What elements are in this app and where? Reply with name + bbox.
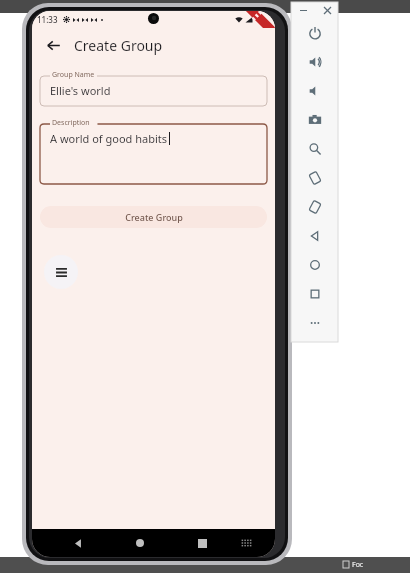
button[interactable]: Overview	[291, 279, 338, 308]
button[interactable]: Home	[109, 529, 171, 557]
button[interactable]: Create Group	[40, 206, 267, 228]
button[interactable]: Description	[40, 118, 267, 184]
button[interactable]: Back	[40, 32, 66, 58]
button[interactable]: Menu	[44, 255, 78, 289]
button[interactable]: Back	[291, 221, 338, 250]
button[interactable]: Volume up	[291, 47, 338, 76]
button[interactable]: Rotate left	[291, 163, 338, 192]
button[interactable]: Screenshot	[291, 105, 338, 134]
staticText: Foc	[352, 560, 364, 570]
button[interactable]: Group Name	[40, 70, 267, 106]
staticText: Description	[52, 118, 90, 128]
button[interactable]: More	[291, 308, 338, 337]
staticText: 11:33	[37, 14, 58, 25]
button[interactable]: Power	[291, 18, 338, 47]
button[interactable]: Home	[291, 250, 338, 279]
button[interactable]: Keyboard	[233, 529, 259, 557]
button[interactable]: Minimize	[296, 3, 310, 17]
staticText: Create Group	[74, 36, 163, 55]
button[interactable]: Rotate right	[291, 192, 338, 221]
staticText: Create Group	[125, 211, 183, 223]
button[interactable]: Recent apps	[171, 529, 233, 557]
staticText: Ellie's world	[50, 83, 111, 98]
button[interactable]: Zoom	[291, 134, 338, 163]
staticText: Group Name	[52, 70, 95, 80]
button[interactable]: Back	[48, 529, 109, 557]
button[interactable]: Close	[320, 3, 334, 17]
staticText: A world of good habits	[50, 131, 168, 146]
button[interactable]: Volume down	[291, 76, 338, 105]
